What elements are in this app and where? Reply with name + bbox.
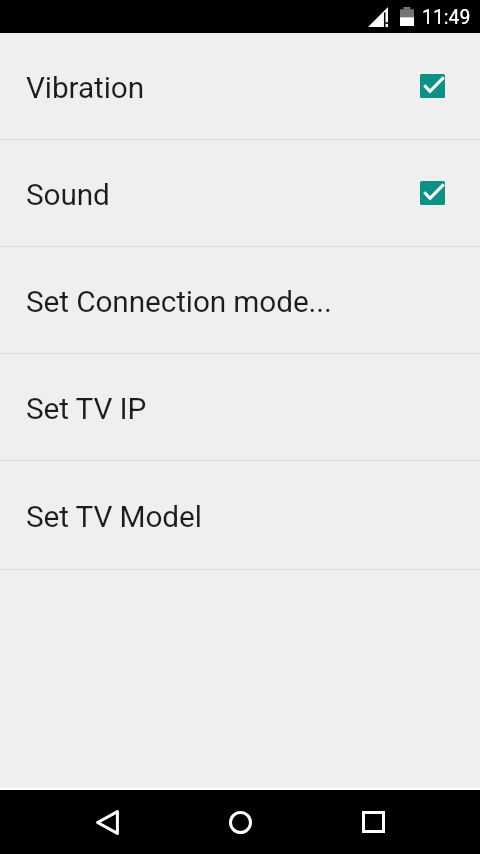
staticText: Set Connection mode... xyxy=(26,284,445,319)
staticText: Set TV Model xyxy=(26,499,445,534)
button[interactable]: Set TV Model xyxy=(0,461,480,569)
button[interactable]: Recent apps xyxy=(307,790,440,854)
button[interactable]: Set TV IP xyxy=(0,354,480,460)
staticText: Set TV IP xyxy=(26,391,445,426)
button[interactable]: Set Connection mode... xyxy=(0,247,480,353)
button[interactable]: Vibration, checked xyxy=(420,74,445,98)
button[interactable]: Sound xyxy=(0,140,480,246)
button[interactable]: Sound, checked xyxy=(420,181,445,205)
staticText: Sound xyxy=(26,177,420,212)
staticText: Vibration xyxy=(26,70,420,105)
button[interactable]: Home xyxy=(174,790,307,854)
staticText: 11:49 xyxy=(422,6,471,29)
button[interactable]: Back xyxy=(40,790,174,854)
button[interactable]: Vibration xyxy=(0,33,480,139)
